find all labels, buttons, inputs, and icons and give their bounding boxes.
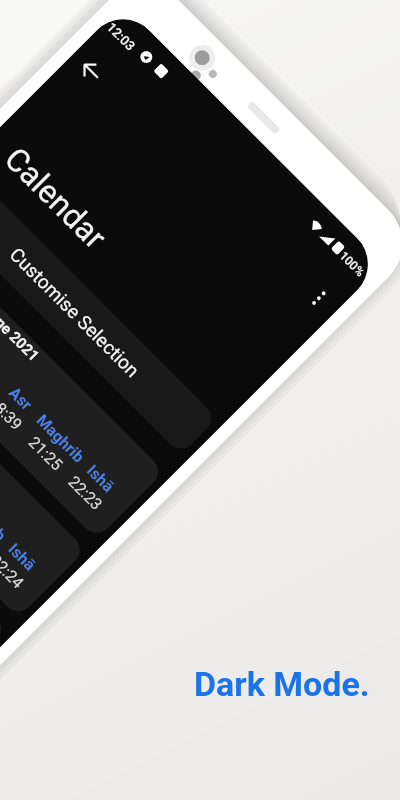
staticText: 22:24 xyxy=(0,551,28,592)
staticText: Dark Mode. xyxy=(194,664,370,704)
staticText: Maghrib xyxy=(0,489,10,545)
button[interactable]: More options xyxy=(290,269,348,327)
button[interactable]: July 2021 xyxy=(0,301,86,618)
staticText: 22:23 xyxy=(64,472,106,514)
staticText: Ishā xyxy=(4,539,40,575)
staticText: Calendar xyxy=(0,140,114,256)
staticText: Customise Selection xyxy=(6,243,144,382)
button[interactable]: Customise Selection xyxy=(0,169,218,455)
staticText: Asr xyxy=(5,383,36,414)
button[interactable]: Back xyxy=(62,41,120,99)
staticText: 12:03 xyxy=(104,20,138,53)
staticText: June 2021 xyxy=(0,302,43,365)
button[interactable]: June 2021 xyxy=(0,222,165,539)
staticText: 100% xyxy=(336,249,368,280)
staticText: Maghrib xyxy=(32,411,88,466)
staticText: 21:25 xyxy=(25,432,66,474)
button[interactable]: August 2021 xyxy=(0,379,8,696)
staticText: Ishā xyxy=(83,461,118,496)
staticText: 18:39 xyxy=(0,392,26,434)
